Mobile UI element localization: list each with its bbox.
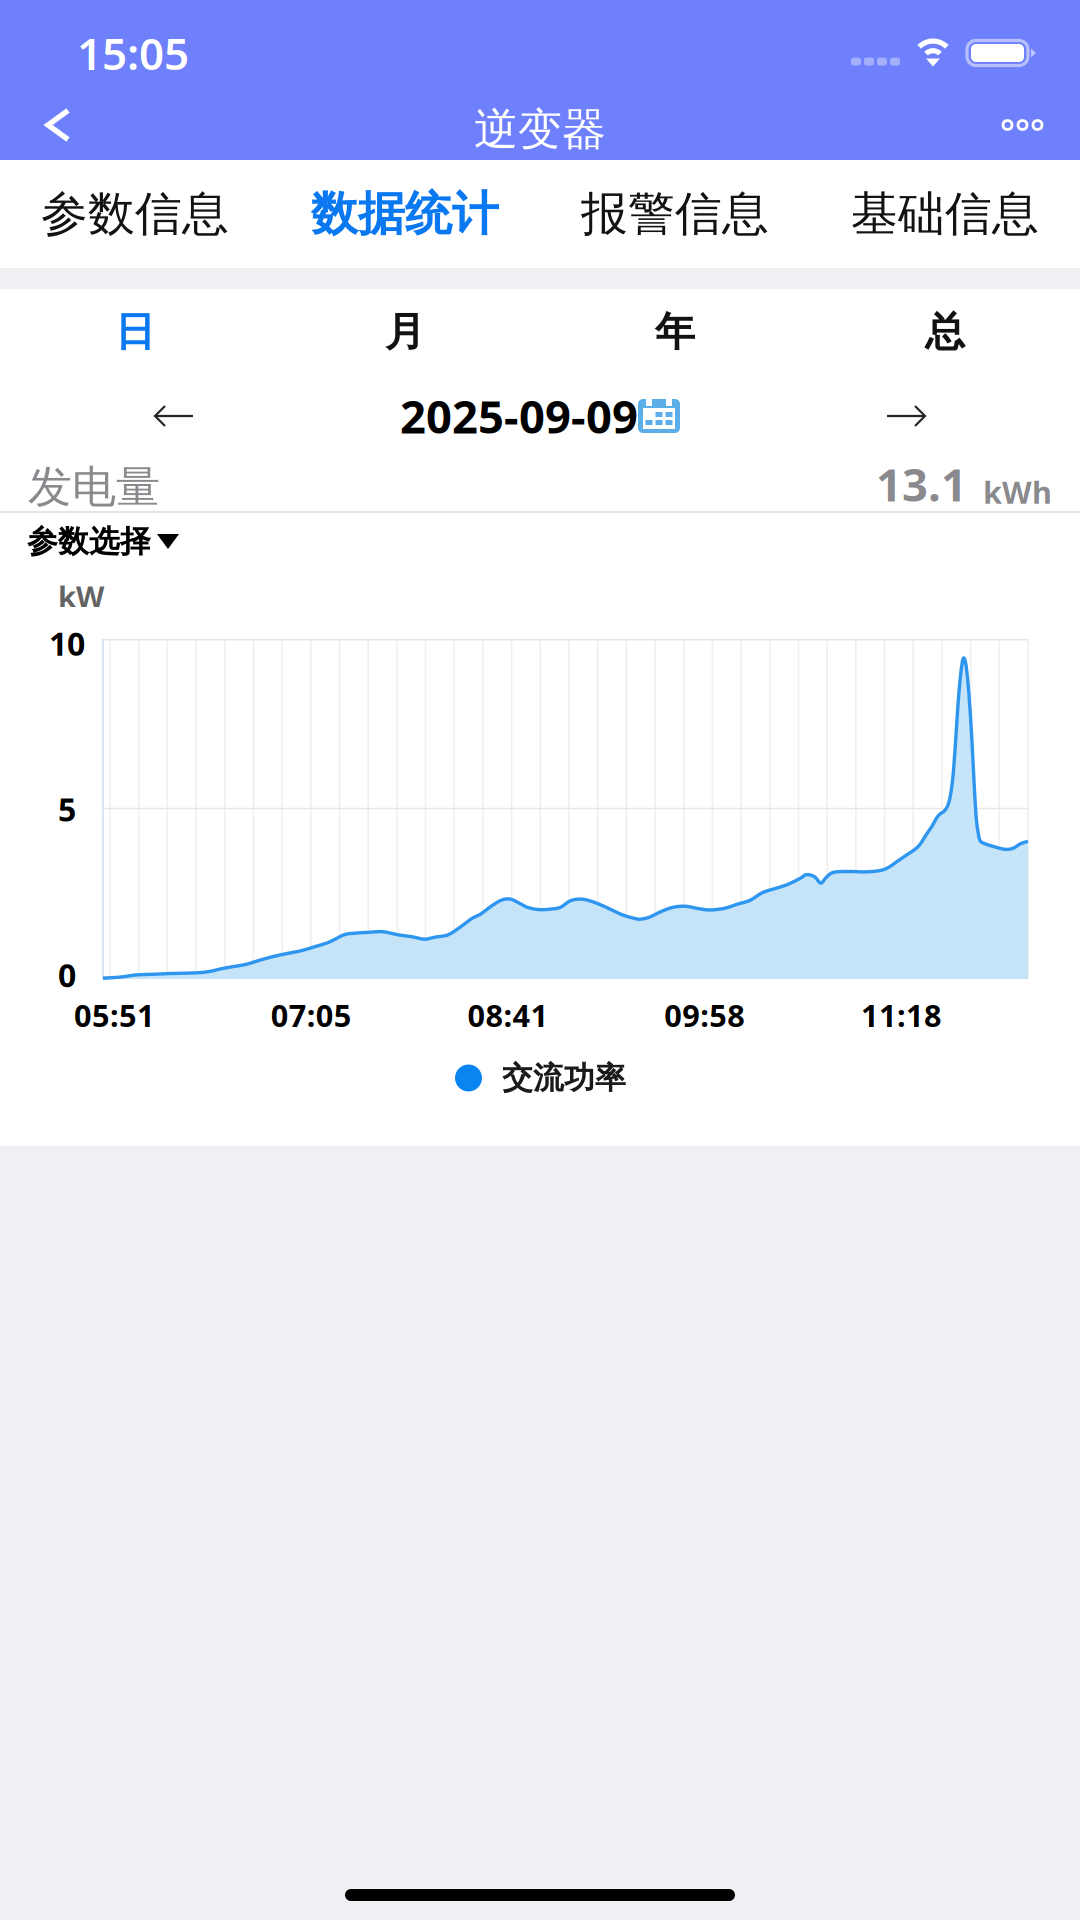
button[interactable]: 总 (810, 289, 1080, 375)
staticText: 2025-09-09 (400, 386, 638, 446)
staticText: 13.1 (876, 454, 967, 514)
staticText: 交流功率 (502, 1059, 626, 1097)
staticText: 发电量 (28, 460, 160, 514)
button[interactable]: More options (969, 94, 1080, 155)
staticText: 11:18 (861, 995, 942, 1035)
staticText: 年 (655, 307, 695, 356)
button[interactable]: 年 (540, 289, 810, 375)
staticText: 参数信息 (41, 185, 229, 243)
button[interactable]: 2025-09-09 (400, 364, 680, 468)
staticText: 08:41 (467, 995, 548, 1035)
button[interactable]: 基础信息 (810, 160, 1080, 268)
button[interactable]: 参数选择 (0, 513, 195, 570)
button[interactable]: 报警信息 (540, 160, 810, 268)
staticText: 09:58 (664, 995, 745, 1035)
button[interactable]: 数据统计 (270, 160, 540, 268)
staticText: 15:05 (77, 24, 189, 82)
staticText: 逆变器 (474, 102, 606, 156)
staticText: 数据统计 (311, 185, 499, 243)
button[interactable]: Back (0, 92, 106, 157)
staticText: 5 (58, 788, 76, 830)
staticText: 05:51 (74, 995, 155, 1035)
staticText: 07:05 (271, 995, 352, 1035)
staticText: 报警信息 (581, 185, 769, 243)
staticText: 0 (58, 953, 76, 996)
button[interactable]: 月 (270, 289, 540, 375)
button[interactable]: Next day (857, 378, 1080, 454)
staticText: 10 (49, 622, 85, 664)
staticText: 基础信息 (851, 185, 1039, 243)
staticText: 月 (385, 307, 425, 356)
staticText: 总 (925, 307, 965, 356)
button[interactable]: 日 (0, 289, 270, 375)
button[interactable]: 参数信息 (0, 160, 270, 268)
staticText: kW (58, 576, 104, 615)
staticText: kWh (983, 471, 1052, 512)
staticText: 参数选择 (27, 523, 151, 560)
button[interactable]: Previous day (0, 378, 223, 454)
staticText: 日 (115, 307, 155, 356)
